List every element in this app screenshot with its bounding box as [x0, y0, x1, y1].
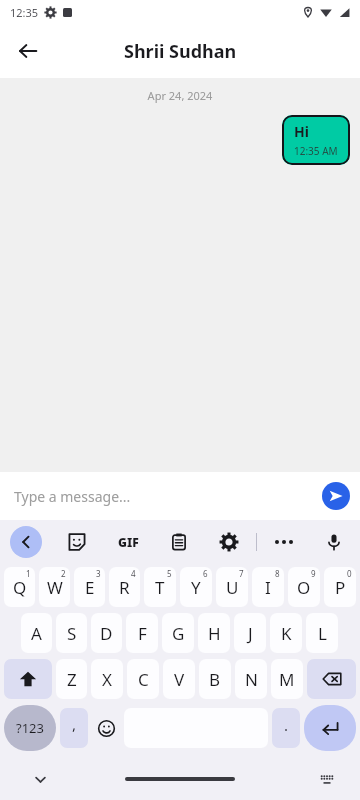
button[interactable]: Enter — [304, 705, 356, 751]
staticText: 6 — [203, 568, 208, 579]
button[interactable]: Voice input — [318, 526, 350, 558]
button[interactable]: Z — [56, 659, 87, 699]
button[interactable]: ?123 — [4, 705, 56, 751]
button[interactable]: H — [198, 613, 230, 653]
button[interactable]: F — [126, 613, 158, 653]
staticText: D — [100, 622, 113, 645]
button[interactable]: Hide keyboard — [26, 765, 54, 793]
button[interactable]: Send — [322, 482, 350, 510]
staticText: 7 — [239, 568, 244, 579]
button[interactable]: N — [235, 659, 267, 699]
staticText: 8 — [275, 568, 280, 579]
button[interactable]: Switch keyboard — [314, 766, 340, 792]
staticText: V — [174, 668, 185, 691]
staticText: Shrii Sudhan — [124, 39, 237, 64]
staticText: A — [31, 622, 42, 645]
button[interactable]: , — [60, 708, 88, 748]
button[interactable]: T — [144, 567, 176, 607]
staticText: 9 — [311, 568, 316, 579]
staticText: Apr 24, 2024 — [0, 88, 360, 103]
staticText: Q — [13, 576, 27, 599]
button[interactable]: GIF — [111, 525, 145, 559]
staticText: C — [138, 668, 149, 691]
button[interactable]: B — [199, 659, 231, 699]
button[interactable]: M — [271, 659, 303, 699]
button[interactable]: K — [270, 613, 302, 653]
button[interactable]: Shift — [4, 659, 52, 699]
button[interactable]: Close toolbar — [10, 526, 42, 558]
staticText: 1 — [26, 568, 31, 579]
staticText: I — [265, 576, 271, 599]
button[interactable]: Back — [8, 31, 48, 71]
staticText: . — [284, 715, 289, 735]
staticText: GIF — [118, 534, 139, 550]
staticText: 0 — [347, 568, 352, 579]
button[interactable]: L — [306, 613, 338, 653]
staticText: Hi — [294, 122, 309, 141]
staticText: U — [226, 576, 239, 599]
button[interactable]: U — [216, 567, 248, 607]
button[interactable]: E — [74, 567, 105, 607]
staticText: B — [209, 668, 221, 691]
button[interactable]: Backspace — [307, 659, 356, 699]
staticText: Z — [67, 668, 77, 691]
staticText: ?123 — [16, 719, 44, 737]
button[interactable]: W — [39, 567, 70, 607]
staticText: 5 — [167, 568, 172, 579]
staticText: G — [172, 622, 185, 645]
button[interactable]: Type a message... — [14, 487, 131, 506]
button[interactable]: Emoji — [92, 708, 120, 748]
button[interactable]: Y — [180, 567, 212, 607]
staticText: 12:35 AM — [294, 144, 338, 158]
staticText: H — [208, 622, 221, 645]
button[interactable]: D — [91, 613, 122, 653]
staticText: 4 — [131, 568, 136, 579]
button[interactable]: A — [21, 613, 52, 653]
staticText: F — [138, 622, 147, 645]
staticText: X — [102, 668, 112, 691]
button[interactable]: O — [288, 567, 320, 607]
staticText: Y — [191, 576, 201, 599]
button[interactable]: P — [324, 567, 356, 607]
staticText: W — [47, 576, 63, 599]
staticText: E — [85, 576, 95, 599]
button[interactable]: Clipboard — [163, 526, 195, 558]
button[interactable]: More options — [268, 526, 300, 558]
staticText: S — [67, 622, 77, 645]
button[interactable]: Settings — [213, 526, 245, 558]
staticText: 12:35 — [10, 5, 39, 20]
button[interactable]: Hi — [282, 115, 350, 165]
staticText: O — [297, 576, 311, 599]
button[interactable]: X — [91, 659, 123, 699]
button[interactable]: C — [127, 659, 159, 699]
button[interactable]: J — [234, 613, 266, 653]
button[interactable]: G — [162, 613, 194, 653]
button[interactable]: I — [252, 567, 284, 607]
staticText: 3 — [96, 568, 101, 579]
staticText: L — [318, 622, 327, 645]
button[interactable]: V — [163, 659, 195, 699]
staticText: T — [155, 576, 165, 599]
staticText: M — [279, 668, 295, 691]
button[interactable]: S — [56, 613, 87, 653]
staticText: P — [335, 576, 346, 599]
staticText: 2 — [61, 568, 66, 579]
staticText: R — [119, 576, 130, 599]
button[interactable]: Stickers — [61, 526, 93, 558]
button[interactable]: . — [272, 708, 300, 748]
staticText: N — [245, 668, 258, 691]
button[interactable]: R — [109, 567, 140, 607]
staticText: K — [281, 622, 292, 645]
button[interactable]: Q — [4, 567, 35, 607]
staticText: J — [248, 622, 253, 645]
staticText: , — [72, 714, 77, 734]
